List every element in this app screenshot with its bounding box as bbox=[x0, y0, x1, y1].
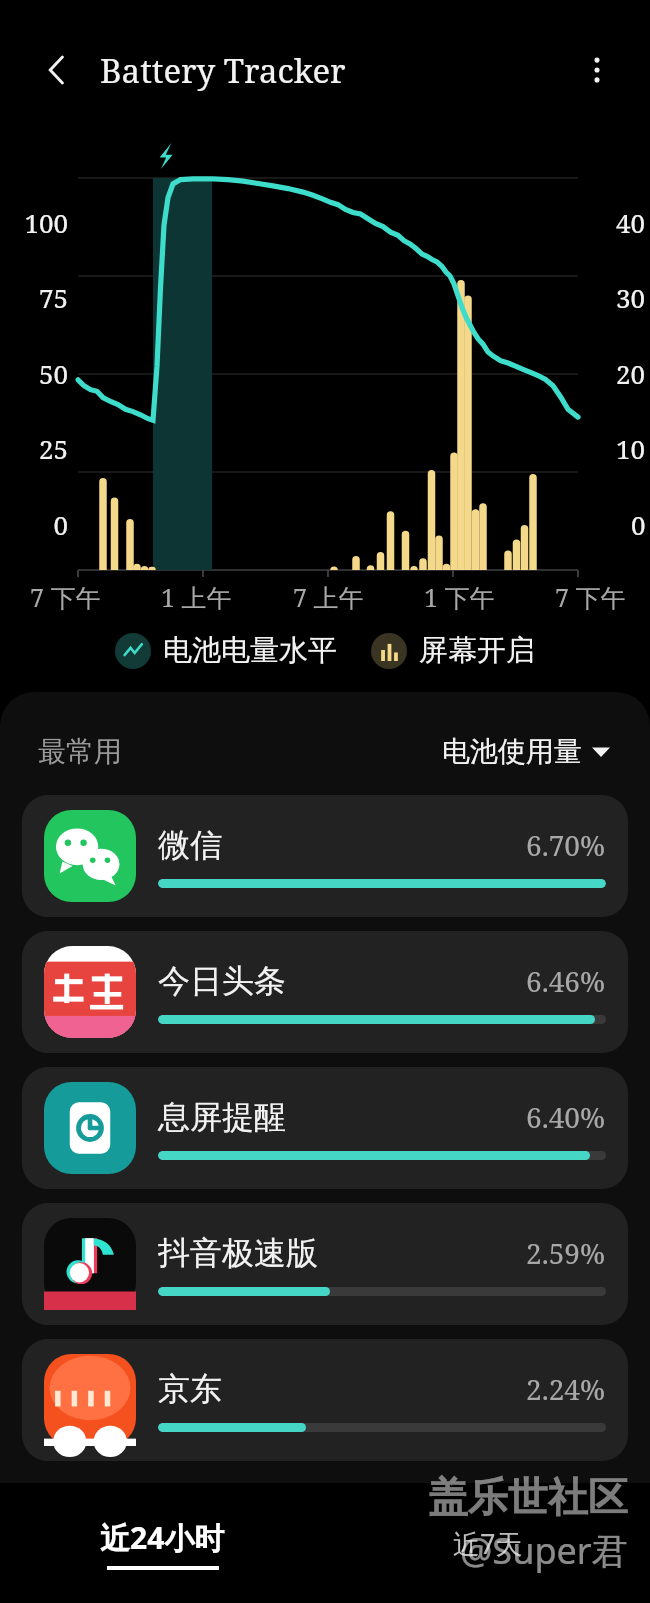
staticText: 微信 bbox=[158, 825, 222, 865]
staticText: 近24小时 bbox=[100, 1517, 225, 1558]
staticText: 1 上午 bbox=[161, 580, 232, 614]
staticText: 40 bbox=[616, 205, 646, 240]
button[interactable]: 近24小时 bbox=[0, 1483, 325, 1603]
staticText: 7 下午 bbox=[30, 580, 101, 614]
staticText: 0 bbox=[631, 507, 646, 542]
staticText: 6.40% bbox=[526, 1098, 606, 1136]
staticText: 75 bbox=[38, 280, 68, 315]
staticText: 盖乐世社区 bbox=[428, 1472, 628, 1522]
staticText: 京东 bbox=[158, 1369, 222, 1409]
staticText: 2.59% bbox=[526, 1234, 606, 1272]
staticText: 今日头条 bbox=[158, 961, 286, 1001]
button[interactable]: 今日头条 bbox=[22, 931, 628, 1053]
staticText: 1 下午 bbox=[424, 580, 495, 614]
staticText: 最常用 bbox=[38, 734, 122, 769]
button[interactable]: 京东 bbox=[22, 1339, 628, 1461]
button[interactable]: 息屏提醒 bbox=[22, 1067, 628, 1189]
staticText: 屏幕开启 bbox=[419, 632, 535, 669]
staticText: 0 bbox=[53, 507, 68, 542]
staticText: 7 下午 bbox=[555, 580, 626, 614]
staticText: 7 上午 bbox=[293, 580, 364, 614]
staticText: 电池电量水平 bbox=[163, 632, 337, 669]
button[interactable]: 抖音极速版 bbox=[22, 1203, 628, 1325]
staticText: 50 bbox=[38, 356, 68, 391]
staticText: 20 bbox=[616, 356, 646, 391]
staticText: 6.46% bbox=[526, 962, 606, 1000]
staticText: 6.70% bbox=[526, 826, 606, 864]
button[interactable]: 电池使用量 bbox=[438, 730, 614, 773]
staticText: 100 bbox=[24, 205, 68, 240]
staticText: Battery Tracker bbox=[100, 48, 346, 93]
staticText: 2.24% bbox=[526, 1370, 606, 1408]
button[interactable]: More options bbox=[566, 39, 628, 101]
staticText: 抖音极速版 bbox=[158, 1233, 318, 1273]
button[interactable]: Back bbox=[26, 39, 88, 101]
staticText: 近7天 bbox=[453, 1525, 523, 1562]
staticText: 25 bbox=[38, 431, 68, 466]
button[interactable]: 屏幕开启 bbox=[367, 632, 539, 669]
button[interactable]: 微信 bbox=[22, 795, 628, 917]
staticText: 10 bbox=[616, 431, 646, 466]
button[interactable]: 电池电量水平 bbox=[111, 632, 341, 669]
staticText: 息屏提醒 bbox=[158, 1097, 286, 1137]
staticText: 30 bbox=[616, 280, 646, 315]
button[interactable]: 近7天 bbox=[325, 1483, 650, 1603]
staticText: @Super君 bbox=[460, 1526, 628, 1575]
staticText: 电池使用量 bbox=[442, 734, 582, 769]
